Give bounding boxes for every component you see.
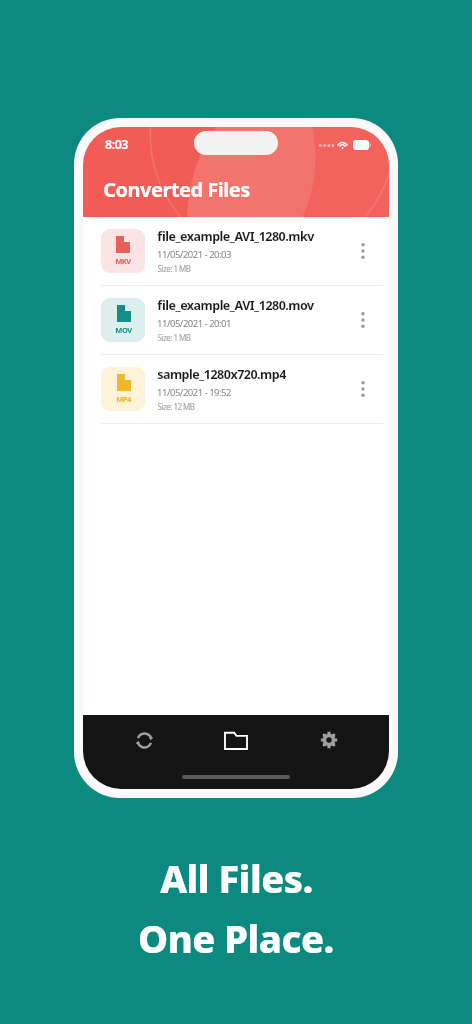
staticText: 8:03 bbox=[105, 136, 128, 153]
button[interactable]: Settings bbox=[297, 715, 361, 765]
button[interactable]: More options bbox=[347, 373, 379, 405]
staticText: file_example_AVI_1280.mov bbox=[157, 297, 314, 314]
button[interactable]: MKV bbox=[83, 217, 389, 285]
button[interactable]: More options bbox=[347, 235, 379, 267]
staticText: Size: 12 MB bbox=[157, 401, 195, 412]
button[interactable]: Files bbox=[204, 715, 268, 765]
staticText: Size: 1 MB bbox=[157, 332, 191, 343]
staticText: 11/05/2021 - 20:01 bbox=[157, 317, 231, 330]
staticText: sample_1280x720.mp4 bbox=[157, 366, 286, 383]
staticText: Size: 1 MB bbox=[157, 263, 191, 274]
staticText: One Place. bbox=[138, 912, 334, 964]
button[interactable]: MOV bbox=[83, 286, 389, 354]
button[interactable]: More options bbox=[347, 304, 379, 336]
button[interactable]: Convert bbox=[112, 715, 176, 765]
staticText: MKV bbox=[115, 256, 131, 266]
staticText: file_example_AVI_1280.mkv bbox=[157, 228, 314, 245]
staticText: MOV bbox=[115, 325, 132, 335]
staticText: MP4 bbox=[116, 394, 131, 404]
staticText: 11/05/2021 - 19:52 bbox=[157, 386, 231, 399]
staticText: 11/05/2021 - 20:03 bbox=[157, 248, 231, 261]
staticText: Converted Files bbox=[103, 176, 250, 203]
staticText: All Files. bbox=[160, 852, 313, 904]
button[interactable]: MP4 bbox=[83, 355, 389, 423]
